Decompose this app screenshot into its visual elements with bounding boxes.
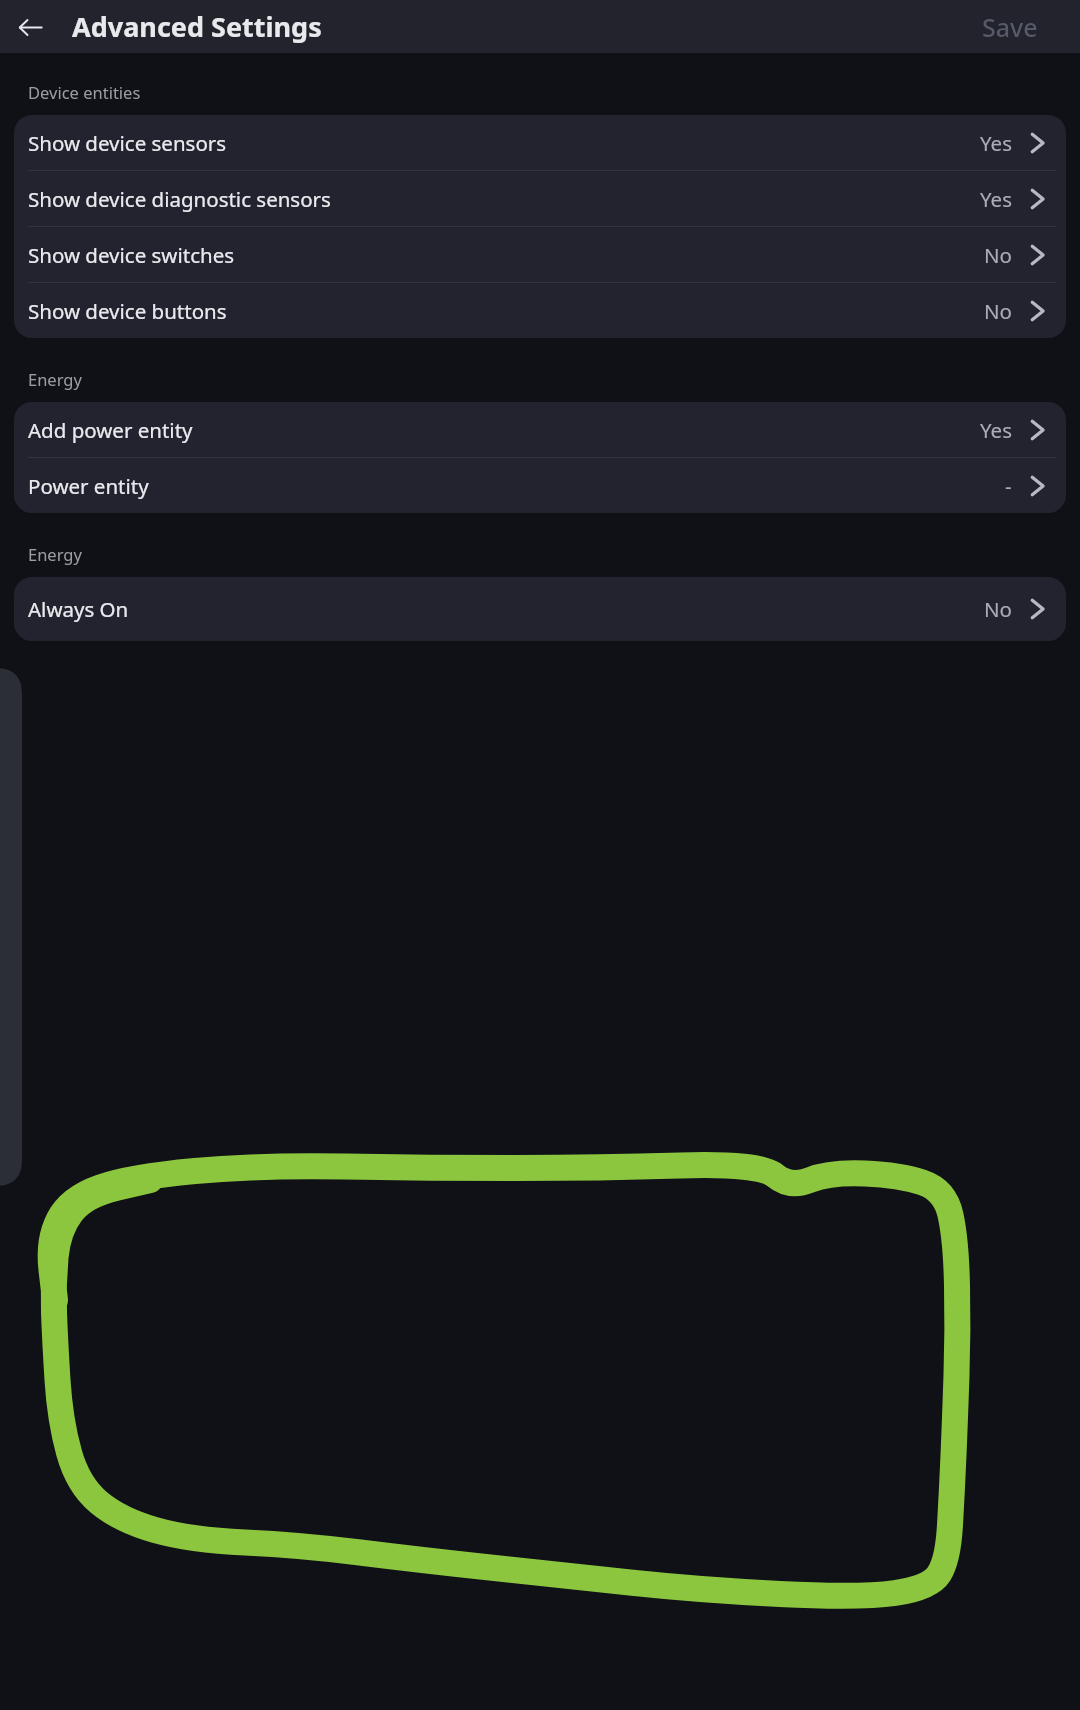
staticText: No	[984, 595, 1012, 623]
staticText: Energy	[28, 368, 82, 390]
button[interactable]: Power entity	[14, 458, 1066, 513]
staticText: Show device diagnostic sensors	[28, 185, 331, 213]
staticText: Energy	[28, 543, 82, 565]
staticText: Device entities	[28, 81, 141, 103]
staticText: Always On	[28, 595, 129, 623]
staticText: Advanced Settings	[72, 8, 322, 45]
staticText: Show device switches	[28, 241, 235, 269]
staticText: Yes	[980, 129, 1012, 157]
button[interactable]: Show device buttons	[14, 283, 1066, 338]
button[interactable]: Show device diagnostic sensors	[14, 171, 1066, 226]
staticText: Save	[982, 10, 1038, 44]
staticText: Show device sensors	[28, 129, 227, 157]
button[interactable]: Back	[10, 7, 50, 47]
staticText: -	[1005, 472, 1012, 500]
staticText: No	[984, 297, 1012, 325]
staticText: Yes	[980, 416, 1012, 444]
button[interactable]: Show device switches	[14, 227, 1066, 282]
button[interactable]: Add power entity	[14, 402, 1066, 457]
staticText: Add power entity	[28, 416, 193, 444]
staticText: Yes	[980, 185, 1012, 213]
staticText: No	[984, 241, 1012, 269]
button[interactable]: Save	[966, 2, 1054, 52]
staticText: Show device buttons	[28, 297, 227, 325]
button[interactable]: Always On	[14, 577, 1066, 641]
button[interactable]: Show device sensors	[14, 115, 1066, 170]
staticText: Power entity	[28, 472, 149, 500]
